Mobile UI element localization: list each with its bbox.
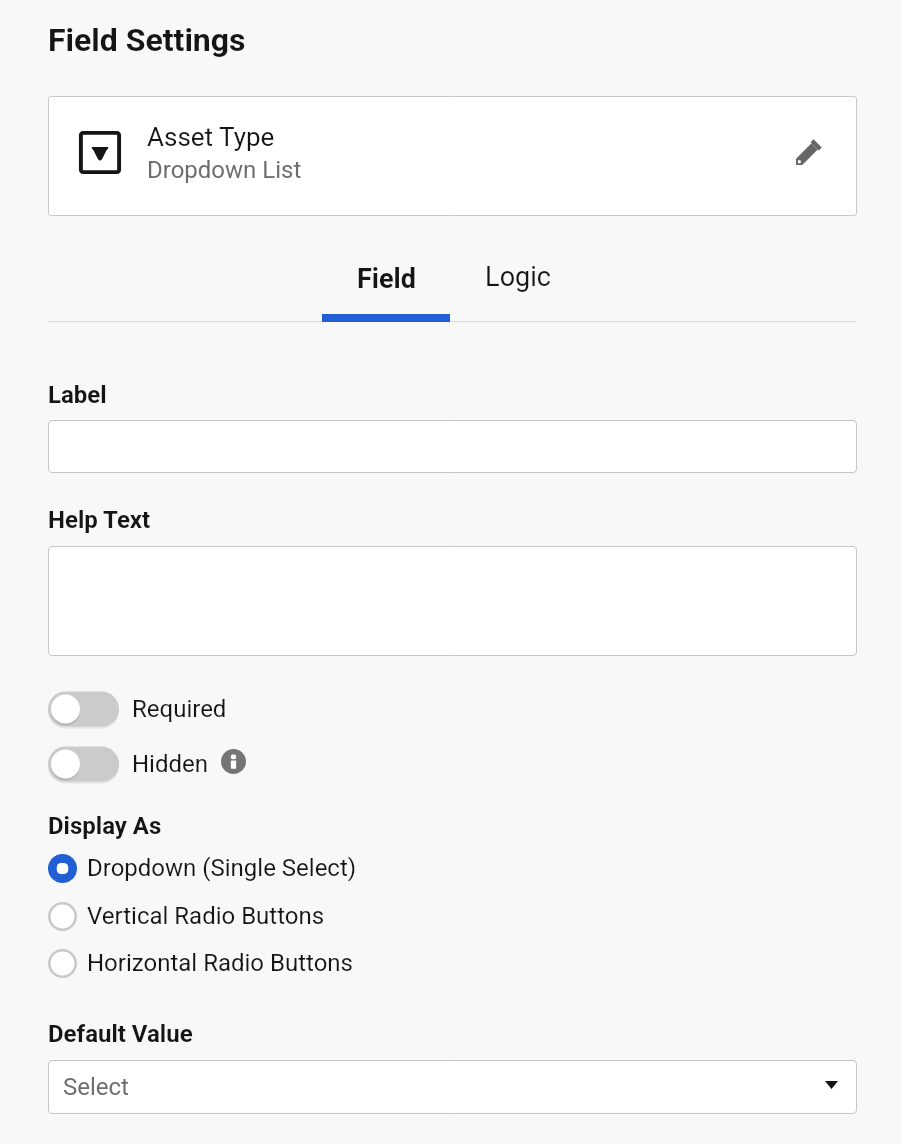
staticText: Dropdown List [147, 156, 302, 184]
button[interactable]: Logic [452, 248, 580, 322]
staticText: Field Settings [48, 21, 246, 59]
button[interactable]: Dropdown (Single Select) [48, 845, 357, 891]
button[interactable]: Vertical Radio Buttons [48, 893, 325, 939]
button[interactable]: Required [48, 689, 227, 729]
button[interactable] [48, 546, 857, 656]
button[interactable]: Asset Type [48, 96, 857, 216]
staticText: Field [357, 263, 416, 295]
staticText: Select [63, 1073, 129, 1101]
staticText: Help Text [48, 506, 151, 534]
staticText: Label [48, 381, 107, 409]
button[interactable]: Horizontal Radio Buttons [48, 940, 353, 986]
staticText: Default Value [48, 1020, 193, 1048]
button[interactable]: Hidden [48, 744, 246, 784]
button[interactable]: Edit field [792, 135, 826, 169]
staticText: Logic [485, 261, 551, 293]
button[interactable] [48, 420, 857, 473]
staticText: Required [132, 695, 227, 723]
staticText: Horizontal Radio Buttons [87, 949, 353, 977]
staticText: Dropdown (Single Select) [87, 854, 357, 882]
button[interactable]: Field [322, 248, 450, 322]
staticText: Vertical Radio Buttons [87, 902, 325, 930]
staticText: Display As [48, 812, 162, 840]
staticText: Asset Type [147, 122, 275, 152]
button[interactable]: Select [48, 1060, 857, 1114]
staticText: Hidden [132, 750, 209, 778]
